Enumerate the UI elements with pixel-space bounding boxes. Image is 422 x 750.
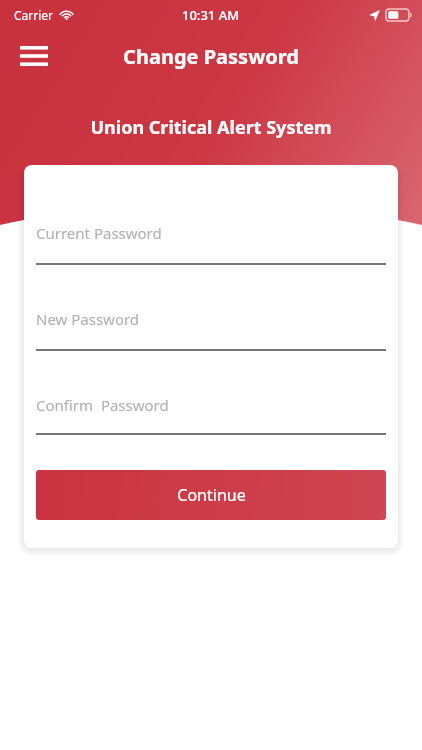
staticText: Union Critical Alert System — [90, 115, 332, 140]
staticText: New Password — [36, 309, 140, 329]
button[interactable]: Confirm Password — [36, 391, 386, 441]
staticText: 10:31 AM — [182, 6, 240, 24]
button[interactable]: New Password — [36, 305, 386, 357]
staticText: Current Password — [36, 223, 162, 243]
staticText: Change Password — [123, 43, 299, 70]
button[interactable]: Continue — [36, 470, 386, 520]
button[interactable]: Current Password — [36, 219, 386, 271]
staticText: Carrier — [14, 7, 54, 23]
staticText: Continue — [177, 484, 246, 506]
staticText: Confirm Password — [36, 395, 169, 415]
button[interactable]: Open navigation menu — [12, 34, 56, 78]
